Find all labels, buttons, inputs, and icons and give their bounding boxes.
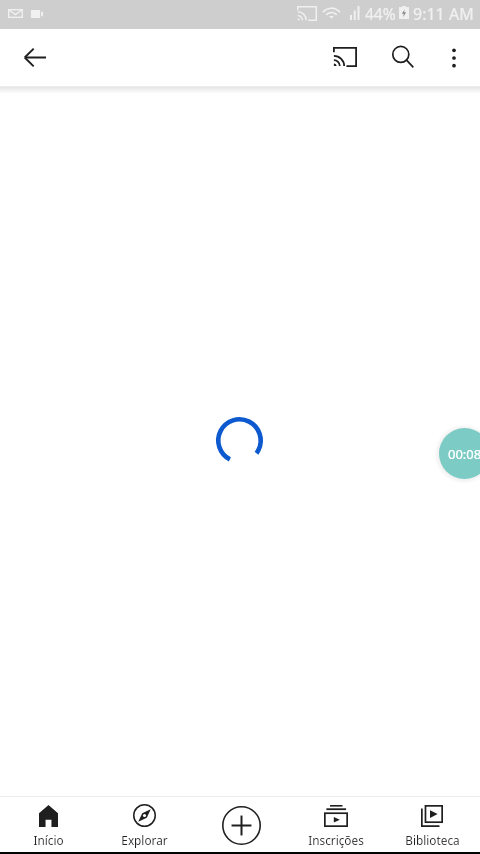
staticText: Início	[33, 832, 64, 848]
button[interactable]: Biblioteca	[384, 797, 480, 852]
staticText: Explorar	[121, 832, 168, 848]
button[interactable]: Back	[10, 33, 58, 81]
button[interactable]: Explorar	[96, 797, 192, 852]
button[interactable]: More options	[430, 34, 478, 82]
button[interactable]: Cast	[321, 33, 369, 81]
staticText: 44%	[365, 3, 396, 24]
staticText: 00:08	[448, 445, 480, 463]
button[interactable]: Search	[379, 33, 427, 81]
staticText: Inscrições	[308, 832, 364, 848]
button[interactable]: Início	[0, 797, 96, 852]
button[interactable]: Create	[212, 797, 268, 852]
staticText: Biblioteca	[405, 832, 460, 848]
button[interactable]: Inscrições	[288, 797, 384, 852]
staticText: 9:11 AM	[413, 3, 474, 25]
button[interactable]: Recording timer	[434, 423, 480, 483]
